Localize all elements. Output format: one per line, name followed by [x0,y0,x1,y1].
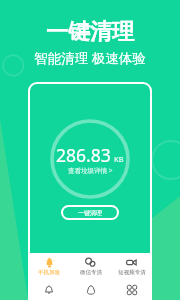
staticText: 微信专清 [80,269,102,276]
staticText: 一键清理 [46,18,134,46]
button[interactable]: 短视频专清 [111,253,152,279]
staticText: 智能清理 极速体验 [34,49,146,67]
button[interactable]: More tools [111,279,152,300]
button[interactable]: 查看垃圾详情 > [68,166,113,175]
button[interactable]: QQ clean [70,279,111,300]
staticText: KB [114,154,124,164]
button[interactable]: 手机加速 [28,253,70,279]
button[interactable]: 微信专清 [70,253,111,279]
staticText: 手机加速 [38,269,60,276]
staticText: 查看垃圾详情 > [68,166,113,175]
staticText: 一键清理 [78,209,102,217]
staticText: 短视频专清 [118,269,146,276]
staticText: 286.83 [56,143,111,167]
button[interactable]: 一键清理 [61,205,119,220]
button[interactable]: Notifications [28,279,70,300]
